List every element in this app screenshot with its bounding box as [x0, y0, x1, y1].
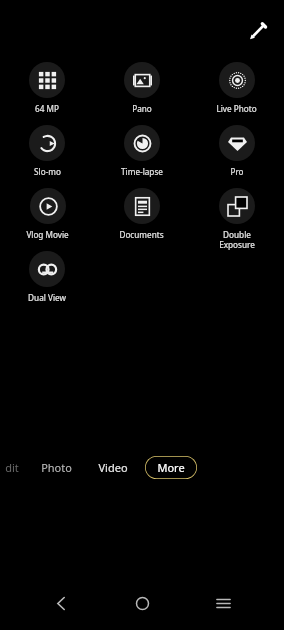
- button[interactable]: Edit camera modes: [240, 13, 276, 49]
- button[interactable]: Time-lapse: [119, 125, 165, 177]
- button[interactable]: Live Photo: [214, 62, 259, 114]
- button[interactable]: More: [145, 456, 197, 479]
- staticText: Live Photo: [216, 103, 257, 114]
- button[interactable]: Pano: [122, 62, 162, 114]
- button[interactable]: dit: [0, 455, 24, 480]
- staticText: Pano: [132, 103, 152, 114]
- button[interactable]: Double Exposure: [217, 188, 257, 251]
- staticText: Double Exposure: [219, 229, 255, 251]
- staticText: More: [157, 460, 185, 475]
- button[interactable]: Dual View: [26, 251, 68, 303]
- button[interactable]: Video: [93, 455, 133, 480]
- button[interactable]: Recent apps: [203, 586, 243, 620]
- button[interactable]: Vlog Movie: [24, 188, 71, 240]
- staticText: Documents: [119, 229, 164, 240]
- staticText: 64 MP: [35, 103, 59, 114]
- button[interactable]: 64 MP: [27, 62, 67, 114]
- button[interactable]: Slo-mo: [27, 125, 67, 177]
- button[interactable]: Back: [41, 586, 81, 620]
- button[interactable]: Home: [122, 586, 162, 620]
- staticText: Vlog Movie: [26, 229, 69, 240]
- staticText: Video: [98, 460, 128, 475]
- button[interactable]: Photo: [36, 455, 77, 480]
- staticText: Pro: [230, 166, 244, 177]
- staticText: Photo: [41, 460, 72, 475]
- staticText: dit: [5, 460, 19, 475]
- staticText: Time-lapse: [121, 166, 163, 177]
- staticText: Dual View: [28, 292, 66, 303]
- staticText: Slo-mo: [34, 166, 61, 177]
- button[interactable]: Pro: [217, 125, 257, 177]
- button[interactable]: Documents: [117, 188, 166, 240]
